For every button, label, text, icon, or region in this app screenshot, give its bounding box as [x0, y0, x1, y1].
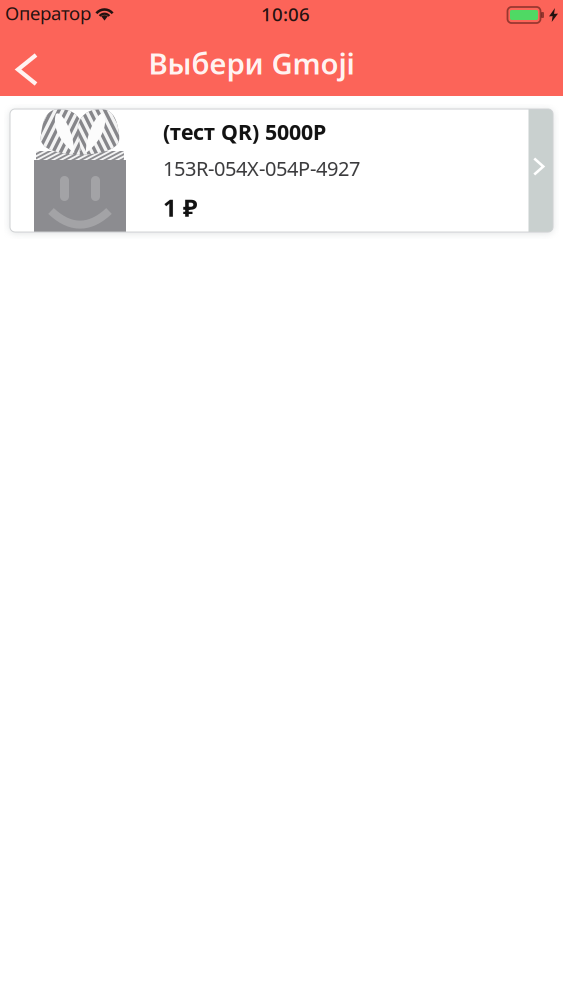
- button[interactable]: Back: [0, 28, 52, 98]
- staticText: 1 ₽: [163, 191, 197, 223]
- staticText: 153R-054X-054P-4927: [163, 155, 360, 181]
- staticText: Выбери Gmoji: [148, 43, 354, 82]
- staticText: Оператор: [5, 1, 91, 25]
- staticText: (тест QR) 5000Р: [163, 118, 326, 146]
- button[interactable]: (тест QR) 5000Р: [10, 109, 553, 232]
- staticText: 10:06: [261, 2, 310, 26]
